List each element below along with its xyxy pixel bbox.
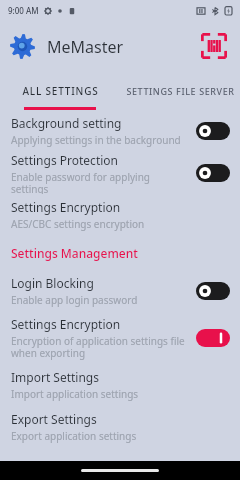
- staticText: Background setting: [11, 115, 122, 131]
- button[interactable]: Scan barcode: [198, 30, 230, 62]
- staticText: Export Settings: [11, 411, 97, 427]
- button[interactable]: Settings Encryption: [0, 312, 240, 364]
- button[interactable]: Export Settings: [0, 406, 240, 448]
- button[interactable]: SETTINGS FILE SERVER: [120, 72, 240, 110]
- staticText: ALL SETTINGS: [22, 84, 99, 98]
- button[interactable]: Toggle on: [196, 329, 230, 347]
- staticText: Login Blocking: [11, 275, 94, 291]
- staticText: Settings Management: [11, 245, 138, 261]
- button[interactable]: Toggle off: [196, 122, 230, 140]
- staticText: Import application settings: [11, 387, 139, 401]
- staticText: Import Settings: [11, 369, 99, 385]
- staticText: Encryption of application settings file …: [11, 334, 188, 360]
- staticText: MeMaster: [47, 36, 124, 58]
- staticText: Settings Encryption: [11, 316, 121, 332]
- staticText: Settings Protection: [11, 152, 118, 168]
- staticText: Enable app login password: [11, 293, 138, 307]
- button[interactable]: Toggle off: [196, 282, 230, 300]
- button[interactable]: Toggle off: [196, 164, 230, 182]
- button[interactable]: ALL SETTINGS: [0, 72, 120, 110]
- staticText: Settings Encryption: [11, 199, 121, 215]
- button[interactable]: Import Settings: [0, 364, 240, 406]
- staticText: 9:00 AM: [8, 5, 39, 16]
- staticText: AES/CBC settings encryption: [11, 217, 145, 231]
- button[interactable]: Settings Encryption: [0, 194, 240, 236]
- staticText: Enable password for applying settings: [11, 170, 188, 194]
- button[interactable]: Settings Protection: [0, 152, 240, 194]
- staticText: Applying settings in the background: [11, 133, 181, 147]
- button[interactable]: Background setting: [0, 110, 240, 152]
- button[interactable]: Login Blocking: [0, 270, 240, 312]
- staticText: SETTINGS FILE SERVER: [126, 85, 235, 97]
- staticText: Export application settings: [11, 429, 137, 443]
- button[interactable]: Settings Management: [0, 236, 240, 270]
